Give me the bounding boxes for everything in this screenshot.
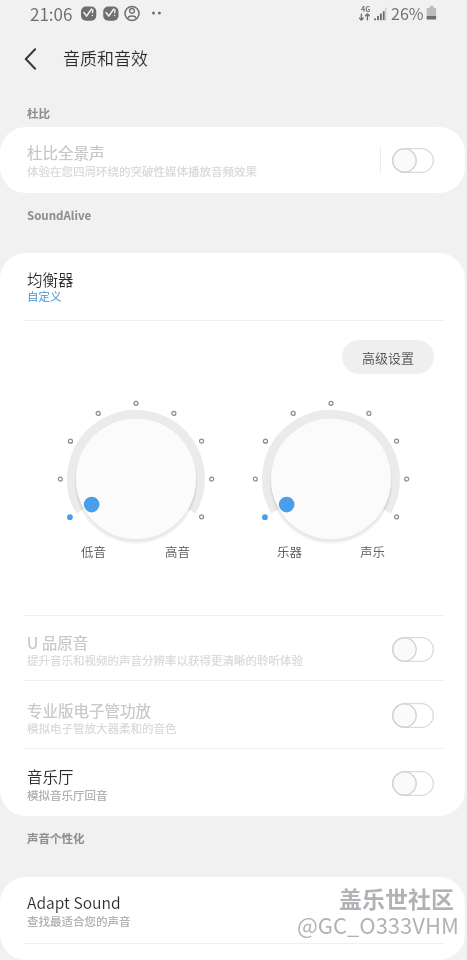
button[interactable]: U 品原音 [380, 617, 446, 681]
staticText: 均衡器 [27, 268, 74, 290]
staticText: 提升音乐和视频的声音分辨率以获得更清晰的聆听体验 [27, 652, 303, 669]
staticText: 声乐 [360, 542, 386, 560]
button[interactable] [0, 682, 467, 749]
staticText: 体验在您四周环绕的突破性媒体播放音频效果 [27, 163, 257, 180]
staticText: 杜比 [27, 105, 50, 122]
staticText: 自定义 [27, 288, 62, 305]
staticText: 21:06 [30, 1, 73, 26]
staticText: SoundAlive [27, 207, 92, 224]
staticText: 低音 [81, 542, 107, 560]
staticText: 高级设置 [362, 348, 415, 367]
button[interactable]: 专业版电子管功放 [380, 682, 446, 749]
button[interactable] [0, 750, 467, 816]
staticText: 音质和音效 [63, 45, 148, 70]
staticText: 模拟音乐厅回音 [27, 787, 108, 804]
staticText: 4G [361, 4, 371, 14]
button[interactable] [0, 877, 467, 943]
staticText: 模拟电子管放大器柔和的音色 [27, 720, 177, 737]
button[interactable]: 低音 高音 [46, 389, 226, 569]
staticText: U 品原音 [27, 631, 89, 653]
button[interactable] [0, 617, 467, 681]
button[interactable]: Back [12, 39, 52, 79]
button[interactable]: 音乐厅 [380, 750, 446, 816]
button[interactable]: 乐器 声乐 [241, 389, 421, 569]
staticText: 专业版电子管功放 [27, 699, 152, 721]
staticText: 声音个性化 [27, 830, 85, 847]
staticText: 盖乐世社区 [339, 881, 454, 914]
button[interactable]: 高级设置 [342, 340, 434, 374]
button[interactable] [0, 253, 467, 320]
staticText: Adapt Sound [27, 891, 121, 913]
staticText: @GC_O333VHM [297, 908, 459, 940]
staticText: 杜比全景声 [27, 141, 105, 163]
staticText: 乐器 [277, 542, 303, 560]
staticText: 26% [391, 1, 424, 24]
staticText: 高音 [165, 542, 191, 560]
button[interactable] [0, 127, 467, 193]
button[interactable]: 杜比全景声 [380, 127, 446, 193]
staticText: 音乐厅 [27, 765, 74, 787]
staticText: 查找最适合您的声音 [27, 913, 131, 930]
